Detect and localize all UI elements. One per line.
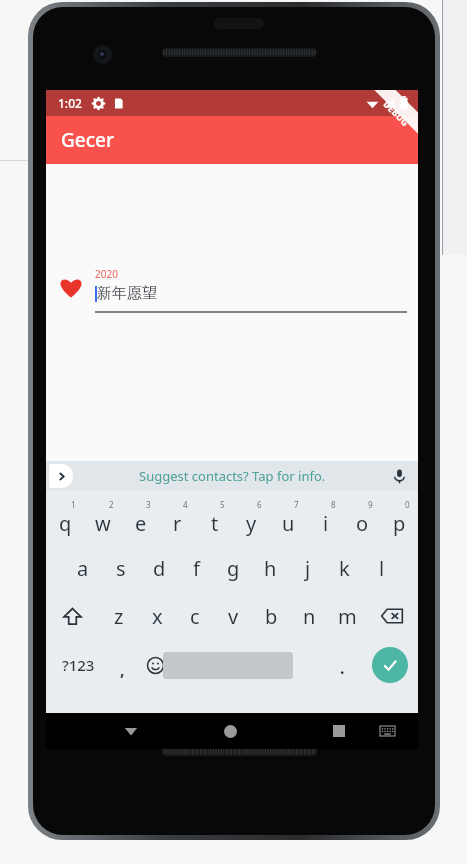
button[interactable]: 6 — [233, 497, 270, 543]
staticText: o — [356, 510, 369, 537]
staticText: 新年愿望 — [97, 284, 157, 303]
staticText: 9 — [368, 499, 373, 510]
button[interactable]: Suggest contacts? Tap for info. — [139, 467, 326, 485]
button[interactable]: 8 — [307, 497, 344, 543]
button[interactable]: Emoji — [140, 650, 170, 680]
staticText: m — [338, 603, 357, 630]
staticText: d — [153, 555, 166, 582]
button[interactable]: b — [252, 593, 290, 639]
button[interactable]: d — [140, 545, 178, 591]
staticText: , — [120, 659, 125, 681]
staticText: DEBUG — [381, 98, 412, 128]
button[interactable]: Expand suggestions — [49, 464, 73, 488]
button[interactable]: 1 — [46, 497, 84, 543]
staticText: 7 — [294, 499, 299, 510]
staticText: a — [77, 555, 89, 582]
staticText: 3 — [146, 499, 151, 510]
staticText: 5 — [220, 499, 225, 510]
button[interactable]: Recents — [322, 714, 356, 748]
button[interactable]: 7 — [270, 497, 307, 543]
staticText: t — [211, 510, 219, 537]
button[interactable]: a — [64, 545, 102, 591]
staticText: f — [193, 555, 200, 582]
button[interactable]: 9 — [344, 497, 381, 543]
button[interactable]: ?123 — [52, 643, 104, 687]
button[interactable]: 4 — [159, 497, 196, 543]
staticText: j — [305, 555, 311, 582]
button[interactable]: v — [214, 593, 252, 639]
button[interactable]: z — [99, 593, 138, 639]
button[interactable]: s — [102, 545, 140, 591]
staticText: w — [95, 510, 111, 537]
staticText: v — [228, 603, 239, 630]
button[interactable]: 0 — [381, 497, 418, 543]
button[interactable]: Favorite — [60, 277, 82, 299]
staticText: 0 — [405, 499, 410, 510]
button[interactable]: 2020 — [95, 267, 407, 313]
button[interactable]: . — [328, 654, 356, 682]
button[interactable]: Gecer — [46, 116, 418, 164]
button[interactable]: k — [326, 545, 363, 591]
staticText: 8 — [331, 499, 336, 510]
staticText: 1 — [71, 499, 76, 510]
staticText: . — [340, 657, 345, 679]
button[interactable]: Switch keyboard — [374, 718, 400, 744]
staticText: x — [152, 603, 163, 630]
staticText: k — [339, 555, 350, 582]
staticText: 1:02 — [58, 95, 82, 111]
staticText: 2 — [109, 499, 114, 510]
staticText: ?123 — [62, 655, 95, 675]
button[interactable]: 5 — [196, 497, 233, 543]
staticText: 6 — [257, 499, 262, 510]
staticText: u — [282, 510, 295, 537]
button[interactable]: g — [215, 545, 252, 591]
button[interactable]: Voice input — [388, 465, 410, 487]
staticText: n — [303, 603, 316, 630]
button[interactable]: h — [252, 545, 289, 591]
staticText: 4 — [183, 499, 188, 510]
staticText: y — [246, 510, 257, 537]
button[interactable]: j — [289, 545, 326, 591]
button[interactable]: l — [363, 545, 400, 591]
button[interactable]: , — [108, 656, 136, 684]
staticText: Gecer — [61, 127, 114, 153]
button[interactable]: m — [328, 593, 366, 639]
staticText: s — [116, 555, 126, 582]
staticText: q — [59, 510, 72, 537]
button[interactable]: Back — [114, 714, 148, 748]
button[interactable]: f — [178, 545, 215, 591]
button[interactable]: Backspace — [366, 593, 418, 639]
button[interactable]: Enter — [372, 647, 408, 683]
button[interactable]: c — [176, 593, 214, 639]
staticText: r — [173, 510, 182, 537]
button[interactable]: x — [138, 593, 176, 639]
staticText: 2020 — [95, 267, 118, 281]
button[interactable]: Home — [213, 714, 247, 748]
button[interactable]: Shift — [46, 593, 99, 639]
staticText: z — [114, 603, 124, 630]
staticText: e — [135, 510, 147, 537]
staticText: p — [393, 510, 406, 537]
button[interactable]: 2 — [84, 497, 122, 543]
staticText: b — [265, 603, 278, 630]
staticText: l — [379, 555, 385, 582]
button[interactable]: 3 — [122, 497, 159, 543]
staticText: g — [227, 555, 240, 582]
staticText: i — [323, 510, 329, 537]
button[interactable]: n — [290, 593, 328, 639]
staticText: c — [190, 603, 200, 630]
staticText: h — [264, 555, 277, 582]
